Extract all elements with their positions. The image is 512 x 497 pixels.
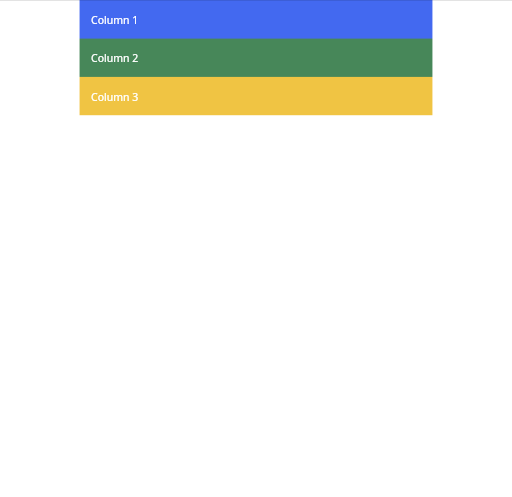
- button[interactable]: Column 1: [80, 0, 432, 38]
- staticText: Column 3: [91, 89, 139, 103]
- staticText: Column 1: [91, 13, 139, 27]
- button[interactable]: Column 3: [80, 76, 432, 114]
- button[interactable]: Column 2: [80, 38, 432, 76]
- staticText: Column 2: [91, 51, 139, 65]
